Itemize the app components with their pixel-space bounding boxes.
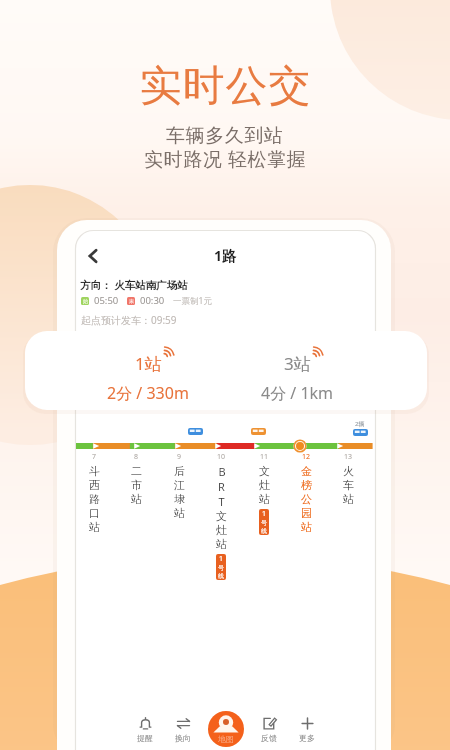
staticText: 站 — [301, 520, 312, 534]
staticText: 西 — [89, 478, 100, 492]
staticText: 地图 — [218, 734, 234, 744]
staticText: 站 — [131, 492, 142, 506]
staticText: 1 — [219, 554, 224, 564]
staticText: 号 — [261, 519, 267, 527]
staticText: 线 — [218, 572, 224, 580]
staticText: 1站 — [135, 352, 162, 375]
button[interactable]: 9 — [165, 452, 193, 520]
button[interactable]: 1站 — [107, 352, 189, 404]
staticText: 11 — [260, 452, 269, 462]
staticText: 2辆 — [355, 420, 365, 428]
staticText: 火 — [343, 464, 354, 478]
staticText: 9 — [177, 452, 182, 462]
staticText: 2分 / 330m — [107, 382, 189, 404]
staticText: 站 — [216, 537, 227, 551]
staticText: 反馈 — [261, 733, 277, 743]
staticText: 一票制1元 — [173, 295, 212, 307]
staticText: 线 — [261, 527, 267, 535]
staticText: 公 — [301, 492, 312, 506]
staticText: 起点预计发车：09:59 — [81, 313, 177, 327]
staticText: 8 — [134, 452, 139, 462]
staticText: 灶 — [259, 478, 270, 492]
staticText: 斗 — [89, 464, 100, 478]
staticText: 二 — [131, 464, 142, 478]
staticText: 站 — [89, 520, 100, 534]
staticText: 始 — [83, 298, 88, 304]
button[interactable]: 提醒 — [127, 716, 163, 743]
staticText: 榜 — [301, 478, 312, 492]
staticText: 提醒 — [137, 733, 153, 743]
staticText: 00:30 — [140, 294, 165, 307]
staticText: 10 — [217, 452, 226, 462]
staticText: 江 — [174, 478, 185, 492]
staticText: R — [218, 479, 225, 494]
staticText: 埭 — [174, 492, 185, 506]
staticText: 方向： 火车站南广场站 — [80, 278, 188, 292]
button[interactable]: 11 — [250, 452, 278, 535]
button[interactable]: 地图 — [208, 711, 244, 747]
staticText: 后 — [174, 464, 185, 478]
staticText: 文 — [259, 464, 270, 478]
button[interactable]: 更多 — [289, 716, 325, 743]
staticText: 口 — [89, 506, 100, 520]
staticText: 末 — [129, 298, 134, 304]
staticText: 号 — [218, 564, 224, 572]
button[interactable]: 10 — [207, 452, 235, 580]
button[interactable]: 12 — [292, 452, 320, 534]
staticText: 车 — [343, 478, 354, 492]
button[interactable]: 7 — [80, 452, 108, 534]
staticText: 市 — [131, 478, 142, 492]
staticText: 7 — [92, 452, 97, 462]
staticText: 文 — [216, 509, 227, 523]
staticText: 换向 — [175, 733, 191, 743]
staticText: 金 — [301, 464, 312, 478]
button[interactable]: 3站 — [261, 352, 334, 404]
staticText: 园 — [301, 506, 312, 520]
staticText: 站 — [259, 492, 270, 506]
staticText: 实时公交 — [139, 60, 311, 113]
staticText: 1路 — [214, 246, 237, 265]
button[interactable]: 换向 — [165, 716, 201, 743]
staticText: 车辆多久到站 — [166, 124, 284, 148]
staticText: 站 — [343, 492, 354, 506]
staticText: T — [218, 494, 225, 509]
staticText: 4分 / 1km — [261, 382, 334, 404]
button[interactable]: 反馈 — [251, 716, 287, 743]
staticText: 灶 — [216, 523, 227, 537]
staticText: 3站 — [284, 352, 311, 375]
staticText: 05:50 — [94, 294, 119, 307]
staticText: 路 — [89, 492, 100, 506]
staticText: 实时路况 轻松掌握 — [144, 146, 307, 172]
staticText: 1 — [262, 509, 267, 519]
button[interactable]: Back — [80, 243, 106, 269]
staticText: 12 — [302, 452, 311, 462]
staticText: 站 — [174, 506, 185, 520]
button[interactable]: 13 — [334, 452, 362, 506]
staticText: 13 — [344, 452, 353, 462]
button[interactable]: 8 — [122, 452, 150, 506]
staticText: 更多 — [299, 733, 315, 743]
staticText: B — [218, 464, 226, 479]
